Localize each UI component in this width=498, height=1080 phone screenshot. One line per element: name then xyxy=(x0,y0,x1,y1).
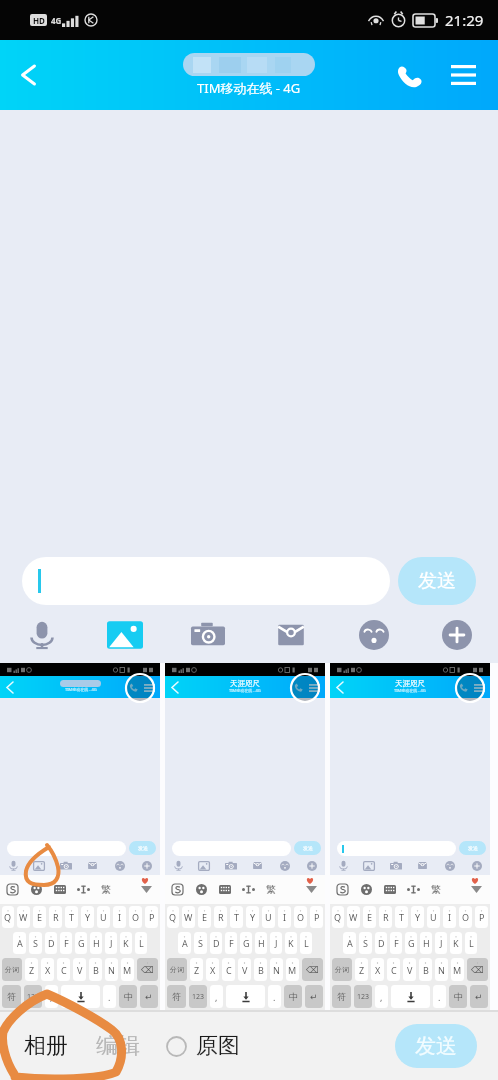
staticText: J xyxy=(440,937,443,949)
staticText: S xyxy=(363,937,368,949)
staticText: E xyxy=(202,911,208,923)
staticText: 21:29 xyxy=(445,10,484,30)
staticText: R xyxy=(383,911,389,923)
staticText: O xyxy=(462,911,470,923)
staticText: 符 xyxy=(337,991,346,1002)
staticText: F xyxy=(229,937,234,949)
staticText: V xyxy=(242,964,248,976)
staticText: L xyxy=(139,937,144,949)
staticText: P xyxy=(314,911,320,923)
staticText: ⌫ xyxy=(306,965,319,975)
staticText: , xyxy=(380,991,383,1003)
button[interactable]: Screenshot 1 xyxy=(0,663,160,1010)
staticText: Z xyxy=(359,964,365,976)
staticText: N xyxy=(108,964,115,976)
staticText: K xyxy=(453,937,459,949)
staticText: A xyxy=(347,937,353,949)
staticText: S xyxy=(198,937,203,949)
staticText: X xyxy=(375,964,381,976)
staticText: . xyxy=(273,991,276,1003)
button[interactable]: 原图 xyxy=(160,1024,246,1068)
button[interactable]: 发送 xyxy=(398,557,476,605)
staticText: 中 xyxy=(454,991,463,1002)
staticText: E xyxy=(37,911,43,923)
staticText: H xyxy=(423,937,430,949)
button[interactable]: Menu xyxy=(438,40,498,110)
staticText: K xyxy=(123,937,129,949)
staticText: TIM移动在线 - 4G xyxy=(229,688,261,693)
staticText: X xyxy=(210,964,216,976)
staticText: L xyxy=(469,937,474,949)
button[interactable]: Voice message xyxy=(0,607,83,663)
staticText: E xyxy=(367,911,373,923)
staticText: B xyxy=(258,964,264,976)
staticText: I xyxy=(448,911,452,923)
staticText: 编辑 xyxy=(96,1032,140,1060)
staticText: B xyxy=(423,964,429,976)
button[interactable]: Camera xyxy=(166,607,249,663)
button[interactable]: Photo album xyxy=(83,607,166,663)
button[interactable]: Emoji xyxy=(332,607,415,663)
button[interactable] xyxy=(22,557,390,605)
staticText: P xyxy=(479,911,485,923)
staticText: H xyxy=(258,937,265,949)
staticText: 天涯咫尺 xyxy=(395,679,425,688)
button[interactable]: Call xyxy=(382,40,438,110)
staticText: Z xyxy=(194,964,200,976)
staticText: 繁 xyxy=(431,883,441,896)
staticText: Q xyxy=(169,911,177,923)
staticText: Q xyxy=(4,911,12,923)
staticText: 中 xyxy=(289,991,298,1002)
staticText: TIM移动在线 - 4G xyxy=(394,688,426,693)
button[interactable]: 发送 xyxy=(395,1024,477,1068)
staticText: G xyxy=(243,937,250,949)
staticText: O xyxy=(132,911,140,923)
staticText: L xyxy=(304,937,309,949)
staticText: 繁 xyxy=(101,883,111,896)
staticText: 123 xyxy=(357,992,370,1002)
staticText: I xyxy=(118,911,122,923)
button[interactable]: Screenshot 2 xyxy=(165,663,325,1010)
staticText: D xyxy=(48,937,55,949)
staticText: C xyxy=(391,964,397,976)
staticText: S xyxy=(33,937,38,949)
staticText: . xyxy=(438,991,441,1003)
staticText: X xyxy=(45,964,51,976)
button[interactable]: Red packet xyxy=(249,607,332,663)
staticText: HD xyxy=(33,15,45,26)
button[interactable]: 编辑 xyxy=(90,1024,146,1068)
staticText: W xyxy=(349,911,358,923)
staticText: ⌫ xyxy=(471,965,484,975)
staticText: I xyxy=(283,911,287,923)
staticText: B xyxy=(93,964,99,976)
staticText: ↵ xyxy=(475,992,483,1002)
staticText: C xyxy=(61,964,67,976)
button[interactable]: More xyxy=(415,607,498,663)
staticText: 发送 xyxy=(415,1033,457,1059)
staticText: U xyxy=(265,911,272,923)
staticText: 分词 xyxy=(170,965,184,974)
staticText: R xyxy=(53,911,59,923)
button[interactable]: Back xyxy=(0,40,56,110)
staticText: A xyxy=(17,937,23,949)
staticText: 发送 xyxy=(303,845,313,851)
staticText: TIM移动在线 - 4G xyxy=(197,79,301,97)
staticText: J xyxy=(110,937,113,949)
button[interactable]: Screenshot 3 xyxy=(330,663,490,1010)
staticText: 123 xyxy=(192,992,205,1002)
staticText: W xyxy=(19,911,28,923)
button[interactable]: 相册 xyxy=(18,1024,74,1068)
staticText: 发送 xyxy=(418,569,456,593)
staticText: Z xyxy=(29,964,35,976)
staticText: Y xyxy=(85,911,91,923)
staticText: N xyxy=(438,964,445,976)
staticText: 符 xyxy=(172,991,181,1002)
staticText: F xyxy=(64,937,69,949)
staticText: G xyxy=(78,937,85,949)
staticText: , xyxy=(215,991,218,1003)
staticText: G xyxy=(408,937,415,949)
staticText: 符 xyxy=(7,991,16,1002)
staticText: P xyxy=(149,911,155,923)
staticText: K xyxy=(288,937,294,949)
staticText: D xyxy=(213,937,220,949)
